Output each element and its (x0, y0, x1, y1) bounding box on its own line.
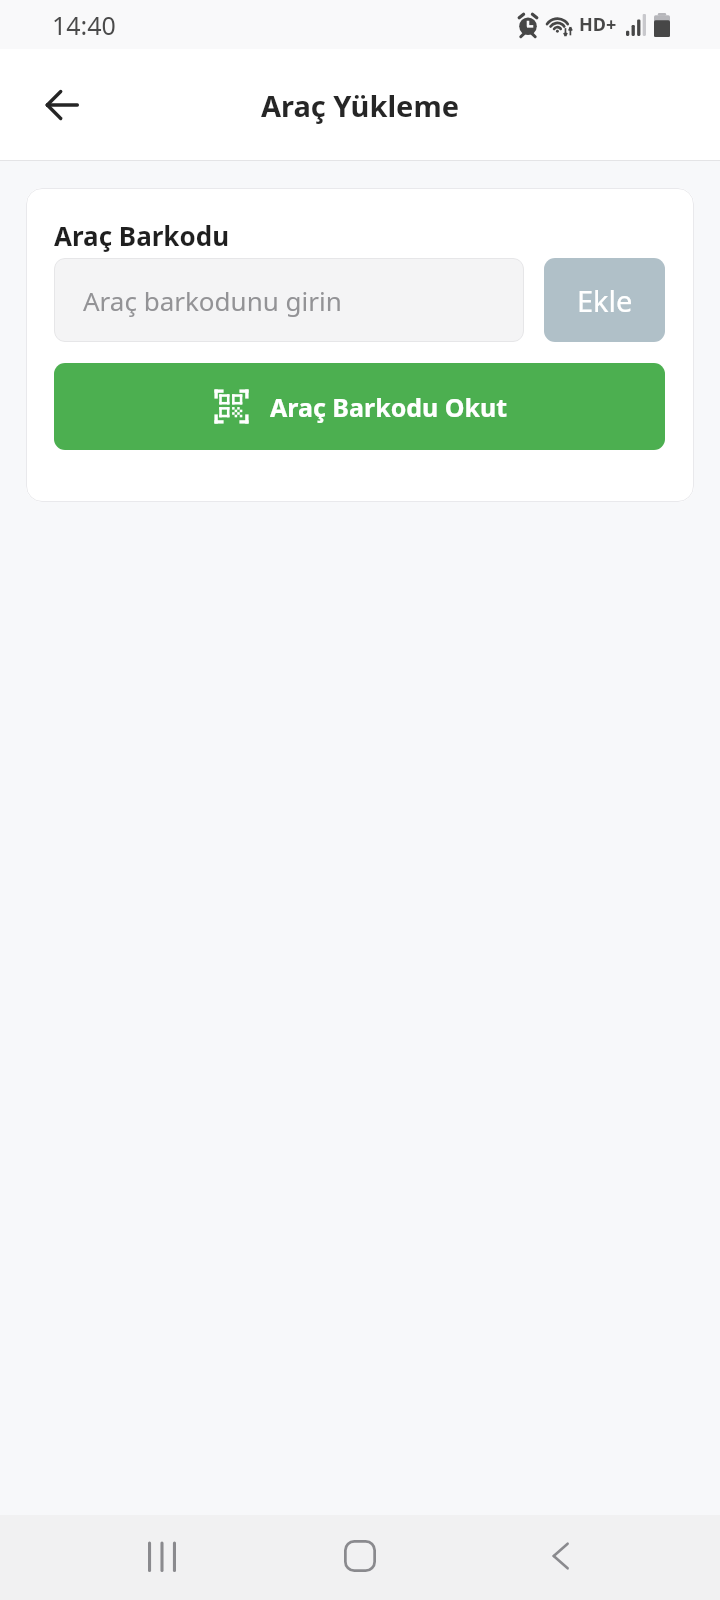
staticText: Araç Yükleme (261, 86, 459, 125)
button[interactable]: Recent apps (113, 1513, 203, 1598)
button[interactable]: Back (26, 69, 98, 141)
staticText: Ekle (577, 281, 633, 320)
staticText: HD+ (579, 12, 617, 37)
button[interactable]: Araç Barkodu Okut (54, 363, 665, 450)
staticText: Araç Barkodu (54, 218, 230, 253)
button[interactable]: Araç barkodunu girin (54, 258, 524, 342)
staticText: Araç barkodunu girin (83, 283, 342, 318)
staticText: Araç Barkodu Okut (270, 390, 508, 424)
button[interactable]: Back (518, 1513, 608, 1598)
staticText: 14:40 (52, 8, 116, 42)
button[interactable]: Ekle (544, 258, 665, 342)
button[interactable]: Home (315, 1513, 405, 1598)
